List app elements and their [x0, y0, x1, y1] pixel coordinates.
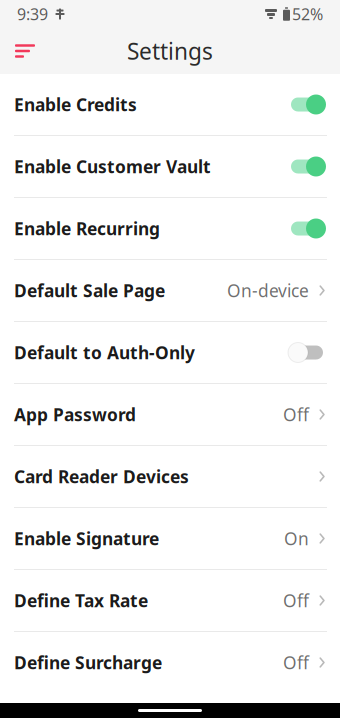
staticText: Settings — [127, 36, 213, 66]
staticText: Define Tax Rate — [14, 589, 148, 612]
staticText: Off — [283, 651, 309, 674]
staticText: Off — [283, 403, 309, 426]
staticText: 52% — [292, 3, 323, 25]
staticText: Default Sale Page — [14, 279, 165, 302]
staticText: Enable Signature — [14, 527, 159, 550]
button[interactable]: App Password — [0, 384, 340, 445]
staticText: Default to Auth-Only — [14, 341, 195, 364]
button[interactable]: Card Reader Devices — [0, 446, 340, 507]
button[interactable]: Menu — [8, 34, 42, 68]
button[interactable]: Default Sale Page — [0, 260, 340, 321]
staticText: Off — [283, 589, 309, 612]
staticText: App Password — [14, 403, 136, 426]
button[interactable]: Define Surcharge — [0, 632, 340, 693]
staticText: Define Surcharge — [14, 651, 162, 674]
button[interactable]: Enable Customer Vault — [0, 136, 340, 197]
button[interactable]: Enable Recurring — [0, 198, 340, 259]
button[interactable]: Enable Credits — [0, 74, 340, 135]
staticText: Enable Credits — [14, 93, 137, 116]
staticText: Card Reader Devices — [14, 465, 189, 488]
staticText: On-device — [227, 279, 309, 302]
staticText: Enable Customer Vault — [14, 155, 211, 178]
button[interactable]: Default to Auth-Only — [0, 322, 340, 383]
staticText: On — [284, 527, 309, 550]
staticText: Enable Recurring — [14, 217, 160, 240]
button[interactable]: Enable Signature — [0, 508, 340, 569]
staticText: 9:39 — [17, 3, 48, 25]
button[interactable]: Define Tax Rate — [0, 570, 340, 631]
